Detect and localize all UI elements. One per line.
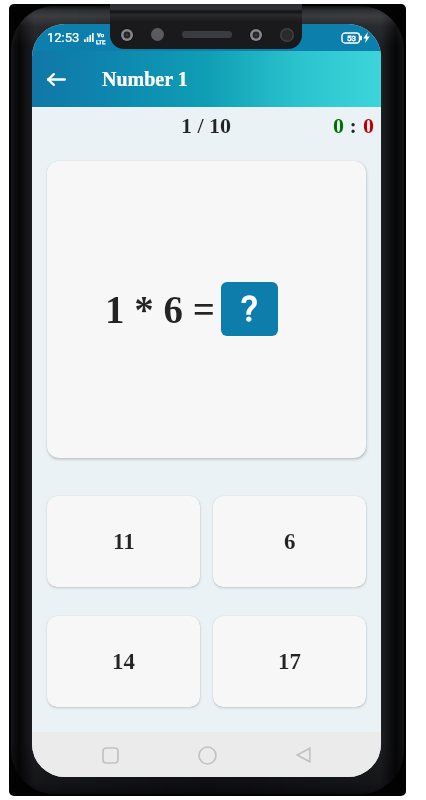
button[interactable]: Back — [32, 51, 80, 107]
button[interactable]: 17 — [213, 616, 366, 707]
staticText: LTE — [96, 38, 106, 45]
staticText: 17 — [278, 649, 301, 674]
button[interactable]: Back — [281, 733, 325, 777]
button[interactable]: 6 — [213, 496, 366, 587]
staticText: 1 * 6 = — [105, 288, 215, 331]
staticText: ? — [241, 289, 258, 330]
staticText: 6 — [284, 529, 296, 554]
button[interactable]: Home — [185, 733, 229, 777]
button[interactable]: 14 — [47, 616, 200, 707]
staticText: 12:53 — [47, 30, 80, 45]
button[interactable]: 11 — [47, 496, 200, 587]
staticText: 0 — [333, 113, 344, 137]
staticText: 14 — [112, 649, 135, 674]
staticText: Vo — [97, 31, 105, 38]
staticText: Number 1 — [102, 68, 188, 90]
staticText: 53 — [347, 34, 356, 43]
staticText: : — [344, 113, 363, 137]
button[interactable]: Recent apps — [88, 733, 132, 777]
button[interactable]: Answer — [221, 282, 278, 336]
staticText: 1 / 10 — [181, 113, 232, 137]
staticText: 11 — [113, 529, 135, 554]
staticText: 0 — [363, 113, 374, 137]
